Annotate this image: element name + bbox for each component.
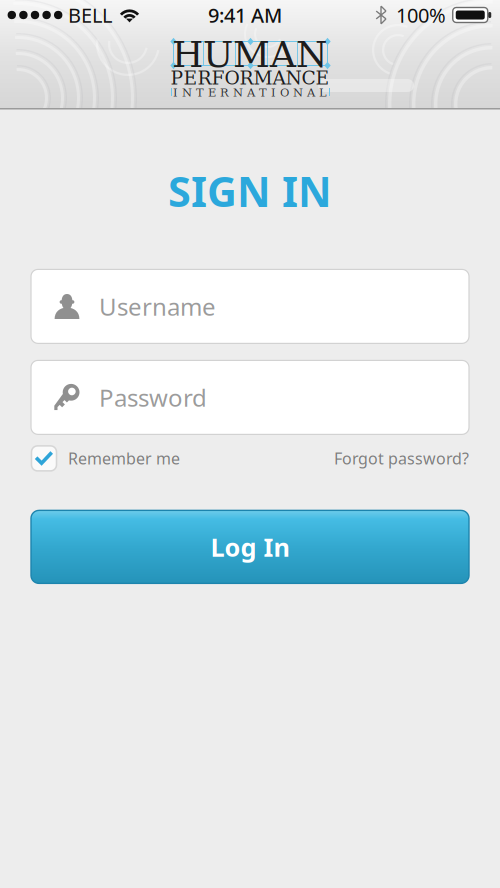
staticText: 100% xyxy=(396,2,446,28)
staticText: HUMAN xyxy=(172,33,328,75)
staticText: PERFORMANCE xyxy=(170,67,329,89)
staticText: 9:41 AM xyxy=(208,2,282,28)
staticText: Forgot password? xyxy=(334,448,469,469)
staticText: Password xyxy=(99,381,207,413)
staticText: Remember me xyxy=(68,448,180,469)
staticText: BELL xyxy=(68,2,112,28)
staticText: Log In xyxy=(210,530,289,564)
staticText: SIGN IN xyxy=(168,163,332,218)
staticText: Username xyxy=(99,290,216,322)
button[interactable]: Log In xyxy=(31,510,469,583)
staticText: I N T E R N A T I O N A L xyxy=(173,86,327,99)
button[interactable]: Remember me xyxy=(31,445,180,471)
button[interactable]: Forgot password? xyxy=(334,448,469,469)
